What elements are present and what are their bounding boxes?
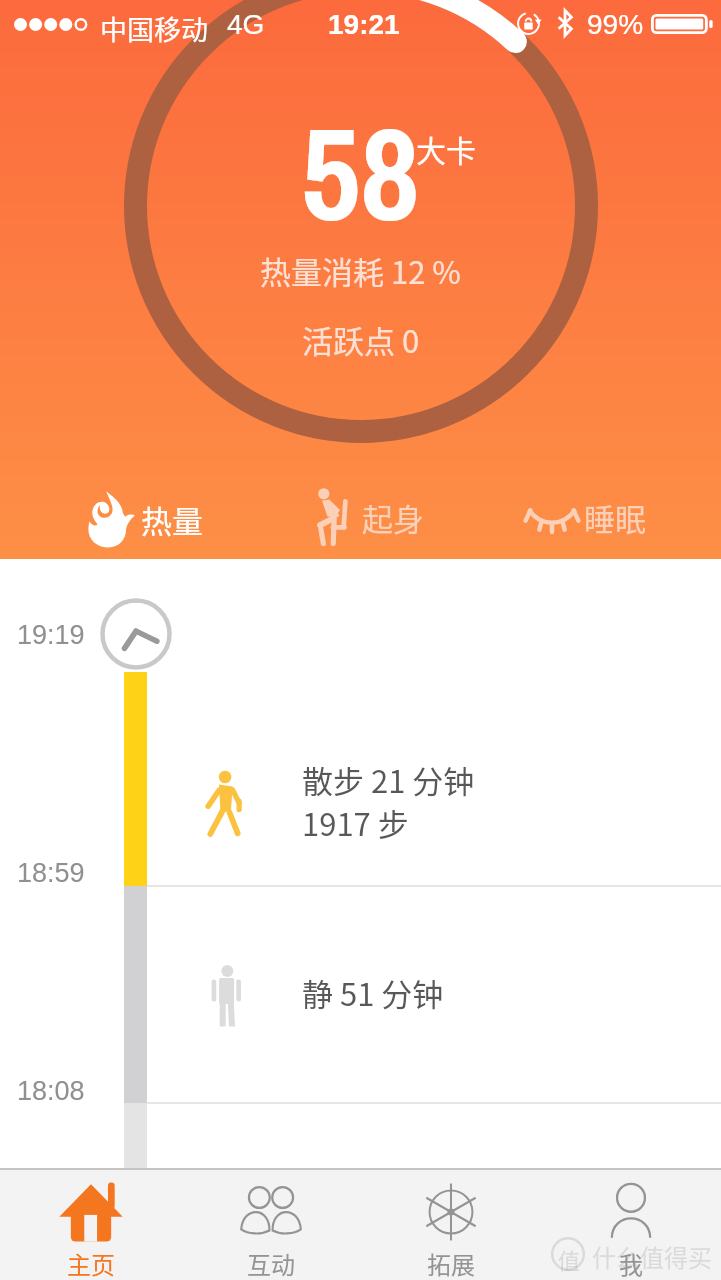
staticText: 19:21 xyxy=(328,9,400,40)
staticText: 4G xyxy=(227,9,265,40)
staticText: 静 51 分钟 xyxy=(302,970,444,1015)
staticText: 主页 xyxy=(67,1246,115,1280)
staticText: 值 xyxy=(558,1243,581,1275)
button[interactable]: 睡眠 xyxy=(522,482,646,552)
button[interactable]: Current time marker xyxy=(100,598,172,670)
button[interactable]: 起身 xyxy=(313,482,424,552)
staticText: 睡眠 xyxy=(584,495,646,540)
button[interactable]: 热量 xyxy=(83,484,203,554)
staticText: 热量消耗 12 % xyxy=(260,248,461,293)
staticText: 19:19 xyxy=(17,620,85,650)
staticText: 我 xyxy=(619,1246,643,1280)
staticText: 活跃点 0 xyxy=(302,317,420,362)
staticText: 互动 xyxy=(247,1246,295,1280)
button[interactable]: 拓展 xyxy=(361,1170,541,1280)
staticText: 58 xyxy=(301,84,420,259)
button[interactable]: 互动 xyxy=(181,1170,361,1280)
staticText: 1917 步 xyxy=(302,800,409,845)
staticText: 18:08 xyxy=(17,1076,85,1106)
staticText: 中国移动 xyxy=(100,9,208,48)
staticText: 散步 21 分钟 xyxy=(302,757,475,802)
staticText: 热量 xyxy=(141,497,203,542)
button[interactable]: 我 xyxy=(541,1170,721,1280)
staticText: 什么值得买 xyxy=(592,1239,712,1274)
staticText: 起身 xyxy=(362,495,424,540)
button[interactable]: 主页 xyxy=(0,1170,181,1280)
staticText: 18:59 xyxy=(17,858,85,888)
staticText: 拓展 xyxy=(427,1246,475,1280)
staticText: 99% xyxy=(587,9,644,40)
staticText: 大卡 xyxy=(416,127,476,170)
